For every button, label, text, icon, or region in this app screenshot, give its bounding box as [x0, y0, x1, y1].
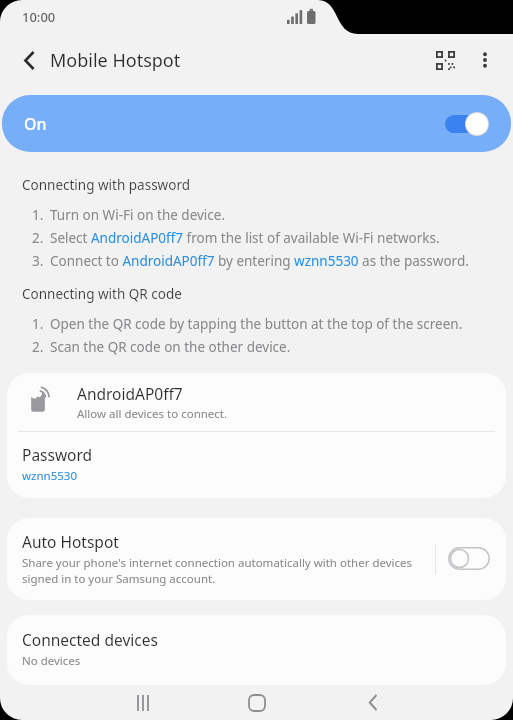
button[interactable]: Recents: [123, 685, 167, 720]
staticText: 1.: [32, 315, 50, 333]
button[interactable]: More options: [465, 40, 505, 80]
button[interactable]: Show QR code: [425, 40, 465, 80]
staticText: On: [24, 113, 47, 135]
button[interactable]: AndroidAP0ff7: [7, 373, 506, 431]
staticText: wznn5530: [22, 468, 77, 484]
button[interactable]: On: [2, 95, 511, 152]
staticText: 2.: [32, 229, 50, 247]
staticText: AndroidAP0ff7: [77, 383, 183, 404]
button[interactable]: Auto Hotspot: [7, 518, 506, 600]
staticText: Connected devices: [22, 629, 158, 650]
staticText: Select AndroidAP0ff7 from the list of av…: [50, 229, 440, 247]
staticText: Turn on Wi-Fi on the device.: [50, 206, 226, 224]
staticText: Connecting with QR code: [22, 285, 182, 303]
staticText: Auto Hotspot: [22, 531, 119, 552]
staticText: Open the QR code by tapping the button a…: [50, 315, 463, 333]
staticText: 3.: [32, 252, 50, 270]
staticText: No devices: [22, 653, 81, 669]
staticText: 2.: [32, 338, 50, 356]
staticText: 1.: [32, 206, 50, 224]
staticText: 10:00: [22, 8, 56, 26]
button[interactable]: Connected devices: [7, 615, 506, 685]
button[interactable]: Home: [235, 685, 279, 720]
button[interactable]: Back: [351, 685, 395, 720]
staticText: Connect to AndroidAP0ff7 by entering wzn…: [50, 252, 469, 270]
button[interactable]: Password: [7, 432, 506, 498]
staticText: Connecting with password: [22, 176, 191, 194]
button[interactable]: Back: [12, 42, 48, 78]
staticText: Share your phone's internet connection a…: [22, 555, 425, 586]
staticText: Password: [22, 444, 93, 465]
staticText: Allow all devices to connect.: [77, 406, 228, 422]
button[interactable]: Auto Hotspot toggle: [448, 547, 490, 570]
staticText: Scan the QR code on the other device.: [50, 338, 291, 356]
staticText: Mobile Hotspot: [50, 48, 181, 73]
